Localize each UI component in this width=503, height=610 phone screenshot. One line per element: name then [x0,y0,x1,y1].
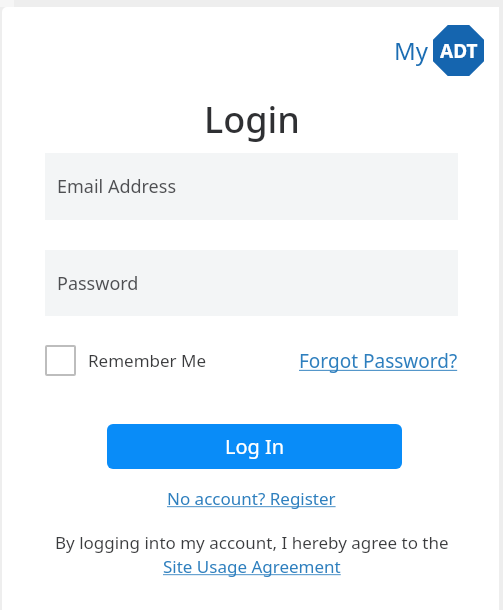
button[interactable]: Email Address [45,153,458,220]
staticText: Remember Me [88,349,207,372]
staticText: Site Usage Agreement [163,555,341,578]
staticText: Forgot Password? [299,348,458,374]
button[interactable]: Password [45,250,458,316]
staticText: Password [57,271,139,296]
staticText: ADT [440,38,478,64]
button[interactable]: Site Usage Agreement [163,555,341,578]
button[interactable]: My [394,25,484,76]
staticText: Log In [225,433,285,460]
button[interactable]: Log In [107,424,402,469]
staticText: My [394,34,429,67]
button[interactable]: No account? Register [167,487,336,510]
staticText: Login [204,95,300,144]
button[interactable]: Forgot Password? [299,348,458,374]
staticText: By logging into my account, I hereby agr… [55,531,449,554]
button[interactable]: Remember Me [45,345,207,376]
staticText: No account? Register [167,487,336,510]
staticText: Email Address [57,174,177,199]
